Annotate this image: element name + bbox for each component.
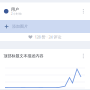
staticText: 128 赞 · 24 评论 — [35, 34, 62, 40]
staticText: 用户 — [11, 7, 19, 12]
staticText: 顶部标题文本描述内容 — [3, 53, 43, 58]
button[interactable]: More options — [80, 5, 87, 18]
staticText: 添加图片 — [12, 24, 28, 29]
staticText: 2小时前 — [11, 12, 22, 16]
button[interactable]: Chart options — [80, 50, 87, 61]
